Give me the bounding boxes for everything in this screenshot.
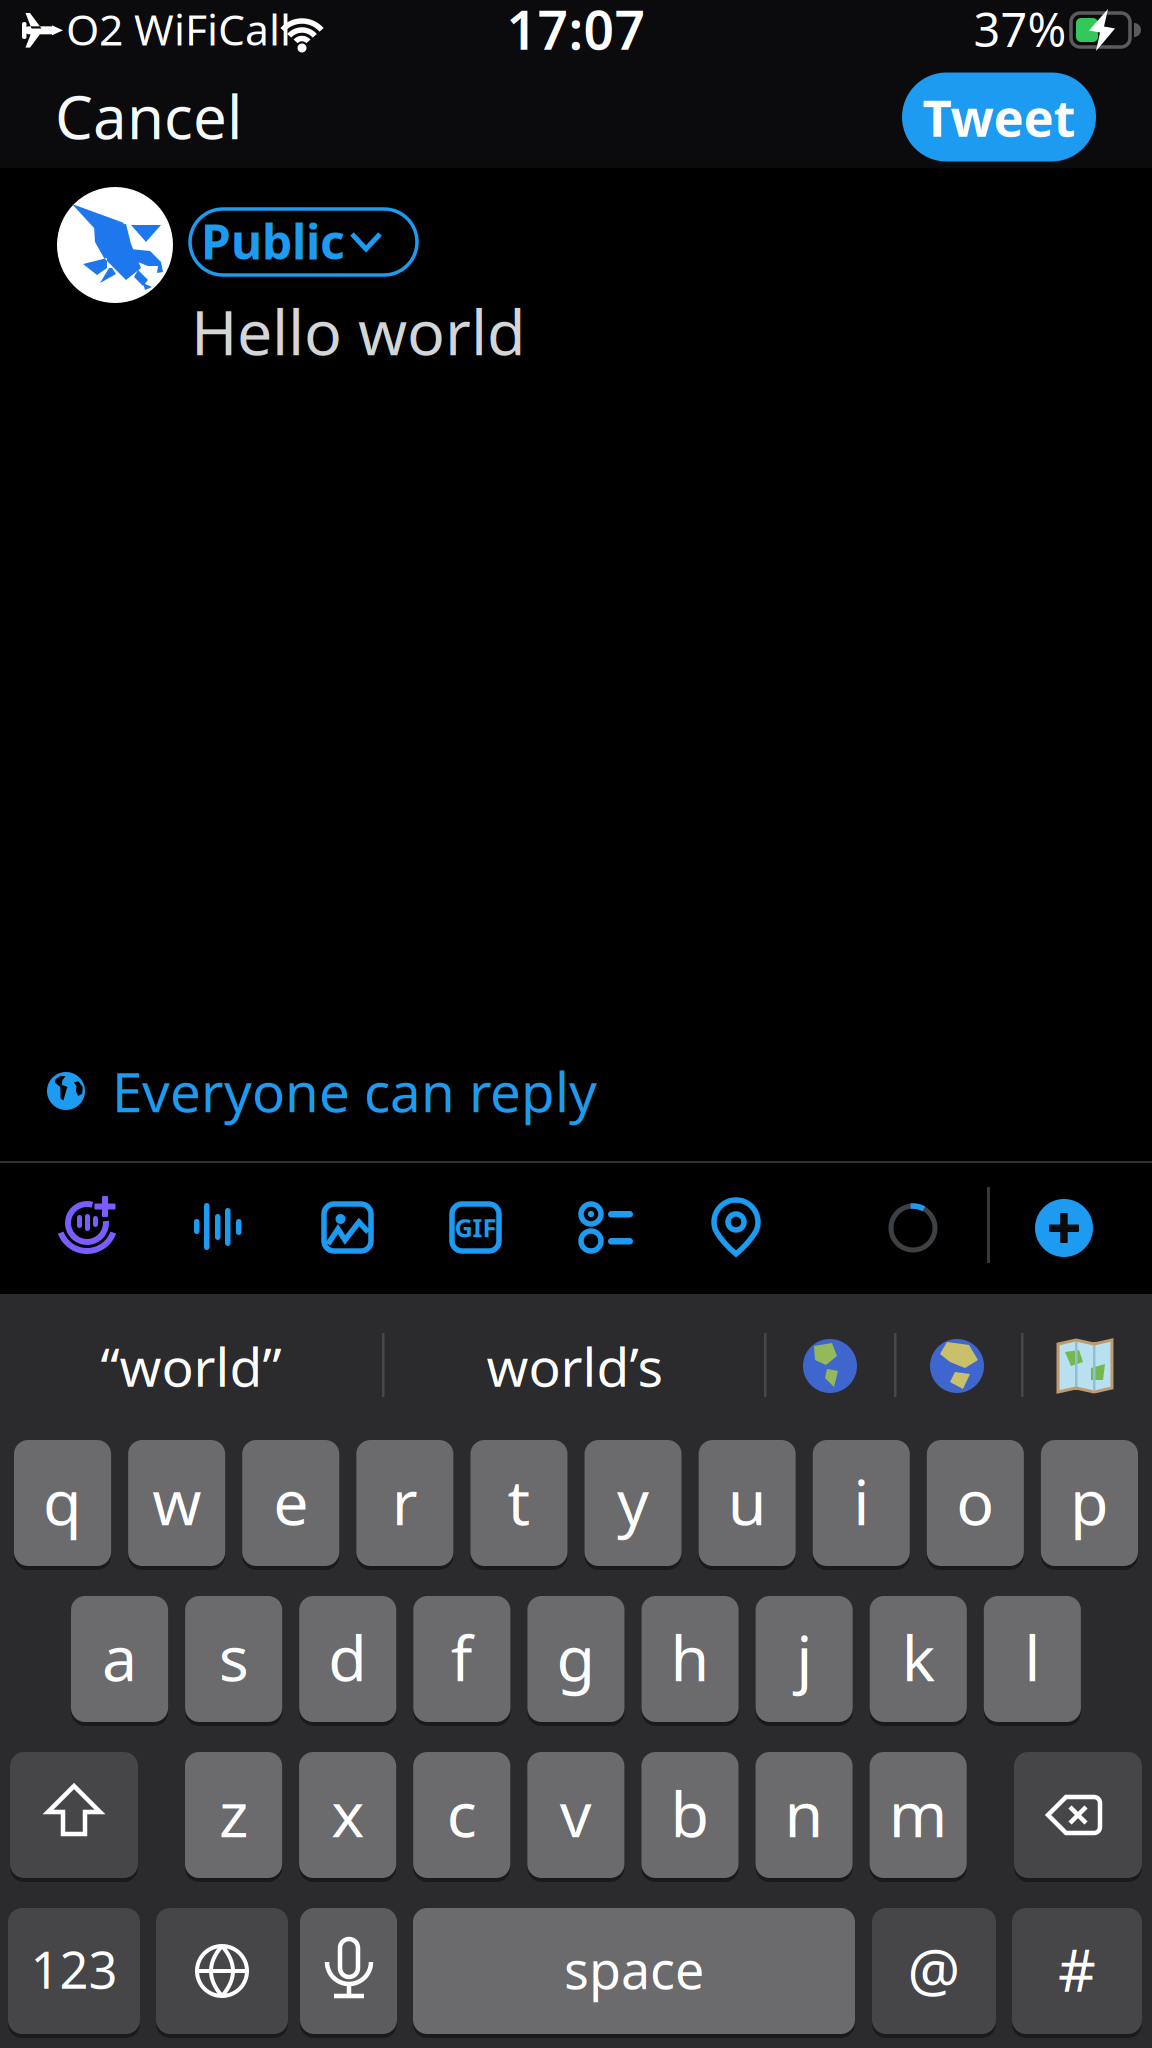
staticText: 17:07: [506, 0, 645, 64]
button[interactable]: a: [0, 0, 1152, 2048]
staticText: w: [152, 1459, 201, 1543]
button[interactable]: space: [0, 0, 1152, 2048]
button[interactable]: e: [0, 0, 1152, 2048]
staticText: Tweet: [922, 83, 1075, 151]
button[interactable]: #: [0, 0, 1152, 2048]
staticText: v: [560, 1771, 592, 1855]
staticText: c: [447, 1771, 477, 1855]
staticText: Everyone can reply: [112, 1055, 597, 1127]
button[interactable]: h: [0, 0, 1152, 2048]
button[interactable]: @: [0, 0, 1152, 2048]
button[interactable]: world’s: [0, 0, 1152, 2048]
button[interactable]: t: [0, 0, 1152, 2048]
button[interactable]: z: [0, 0, 1152, 2048]
button[interactable]: Voice: [0, 0, 1152, 2048]
staticText: 123: [30, 1935, 117, 2003]
button[interactable]: k: [0, 0, 1152, 2048]
staticText: world’s: [486, 1331, 663, 1401]
button[interactable]: Photos: [0, 0, 1152, 2048]
staticText: y: [617, 1459, 649, 1543]
button[interactable]: globe europe emoji: [0, 0, 1152, 2048]
staticText: z: [219, 1771, 248, 1855]
button[interactable]: Add another Tweet: [0, 0, 1152, 2048]
staticText: u: [728, 1459, 767, 1543]
button[interactable]: 123: [0, 0, 1152, 2048]
button[interactable]: “world”: [0, 0, 1152, 2048]
button[interactable]: Delete: [0, 0, 1152, 2048]
button[interactable]: x: [0, 0, 1152, 2048]
button[interactable]: Poll: [0, 0, 1152, 2048]
button[interactable]: u: [0, 0, 1152, 2048]
button[interactable]: globe americas emoji: [0, 0, 1152, 2048]
staticText: Hello world: [191, 289, 526, 373]
staticText: e: [273, 1459, 308, 1543]
button[interactable]: world map emoji: [0, 0, 1152, 2048]
button[interactable]: j: [0, 0, 1152, 2048]
staticText: h: [670, 1615, 709, 1699]
staticText: b: [670, 1771, 709, 1855]
button[interactable]: GIF: [0, 0, 1152, 2048]
button[interactable]: i: [0, 0, 1152, 2048]
staticText: a: [102, 1615, 137, 1699]
button[interactable]: Location: [0, 0, 1152, 2048]
staticText: j: [796, 1615, 812, 1699]
staticText: space: [564, 1934, 704, 2004]
button[interactable]: Spaces: [0, 0, 1152, 2048]
staticText: g: [556, 1615, 595, 1699]
staticText: s: [219, 1615, 249, 1699]
button[interactable]: Public: [0, 0, 1152, 2048]
staticText: @: [907, 1930, 960, 2008]
staticText: Cancel: [55, 76, 242, 156]
button[interactable]: Cancel: [0, 0, 1152, 2048]
staticText: t: [507, 1459, 530, 1543]
button[interactable]: d: [0, 0, 1152, 2048]
button[interactable]: b: [0, 0, 1152, 2048]
button[interactable]: n: [0, 0, 1152, 2048]
button[interactable]: q: [0, 0, 1152, 2048]
button[interactable]: r: [0, 0, 1152, 2048]
staticText: f: [451, 1615, 473, 1699]
button[interactable]: g: [0, 0, 1152, 2048]
button[interactable]: y: [0, 0, 1152, 2048]
button[interactable]: f: [0, 0, 1152, 2048]
staticText: m: [889, 1771, 948, 1855]
staticText: n: [784, 1771, 823, 1855]
staticText: i: [853, 1459, 869, 1543]
button[interactable]: v: [0, 0, 1152, 2048]
button[interactable]: s: [0, 0, 1152, 2048]
staticText: r: [392, 1459, 418, 1543]
staticText: O2 WiFiCall: [66, 1, 291, 57]
button[interactable]: o: [0, 0, 1152, 2048]
button[interactable]: Tweet: [902, 72, 1096, 161]
staticText: p: [1070, 1459, 1109, 1543]
button[interactable]: Shift: [0, 0, 1152, 2048]
staticText: o: [956, 1459, 994, 1543]
staticText: GIF: [454, 1211, 496, 1244]
staticText: q: [43, 1459, 82, 1543]
button[interactable]: Dictate: [0, 0, 1152, 2048]
button[interactable]: Everyone can reply: [0, 0, 1152, 2048]
staticText: k: [902, 1615, 935, 1699]
button[interactable]: Next keyboard: [0, 0, 1152, 2048]
staticText: x: [331, 1771, 364, 1855]
button[interactable]: p: [0, 0, 1152, 2048]
staticText: 37%: [973, 0, 1066, 60]
button[interactable]: w: [0, 0, 1152, 2048]
staticText: l: [1024, 1615, 1040, 1699]
staticText: “world”: [100, 1331, 281, 1401]
staticText: d: [328, 1615, 367, 1699]
button[interactable]: m: [0, 0, 1152, 2048]
staticText: Public: [201, 209, 345, 273]
button[interactable]: c: [0, 0, 1152, 2048]
staticText: #: [1058, 1930, 1096, 2008]
button[interactable]: l: [0, 0, 1152, 2048]
